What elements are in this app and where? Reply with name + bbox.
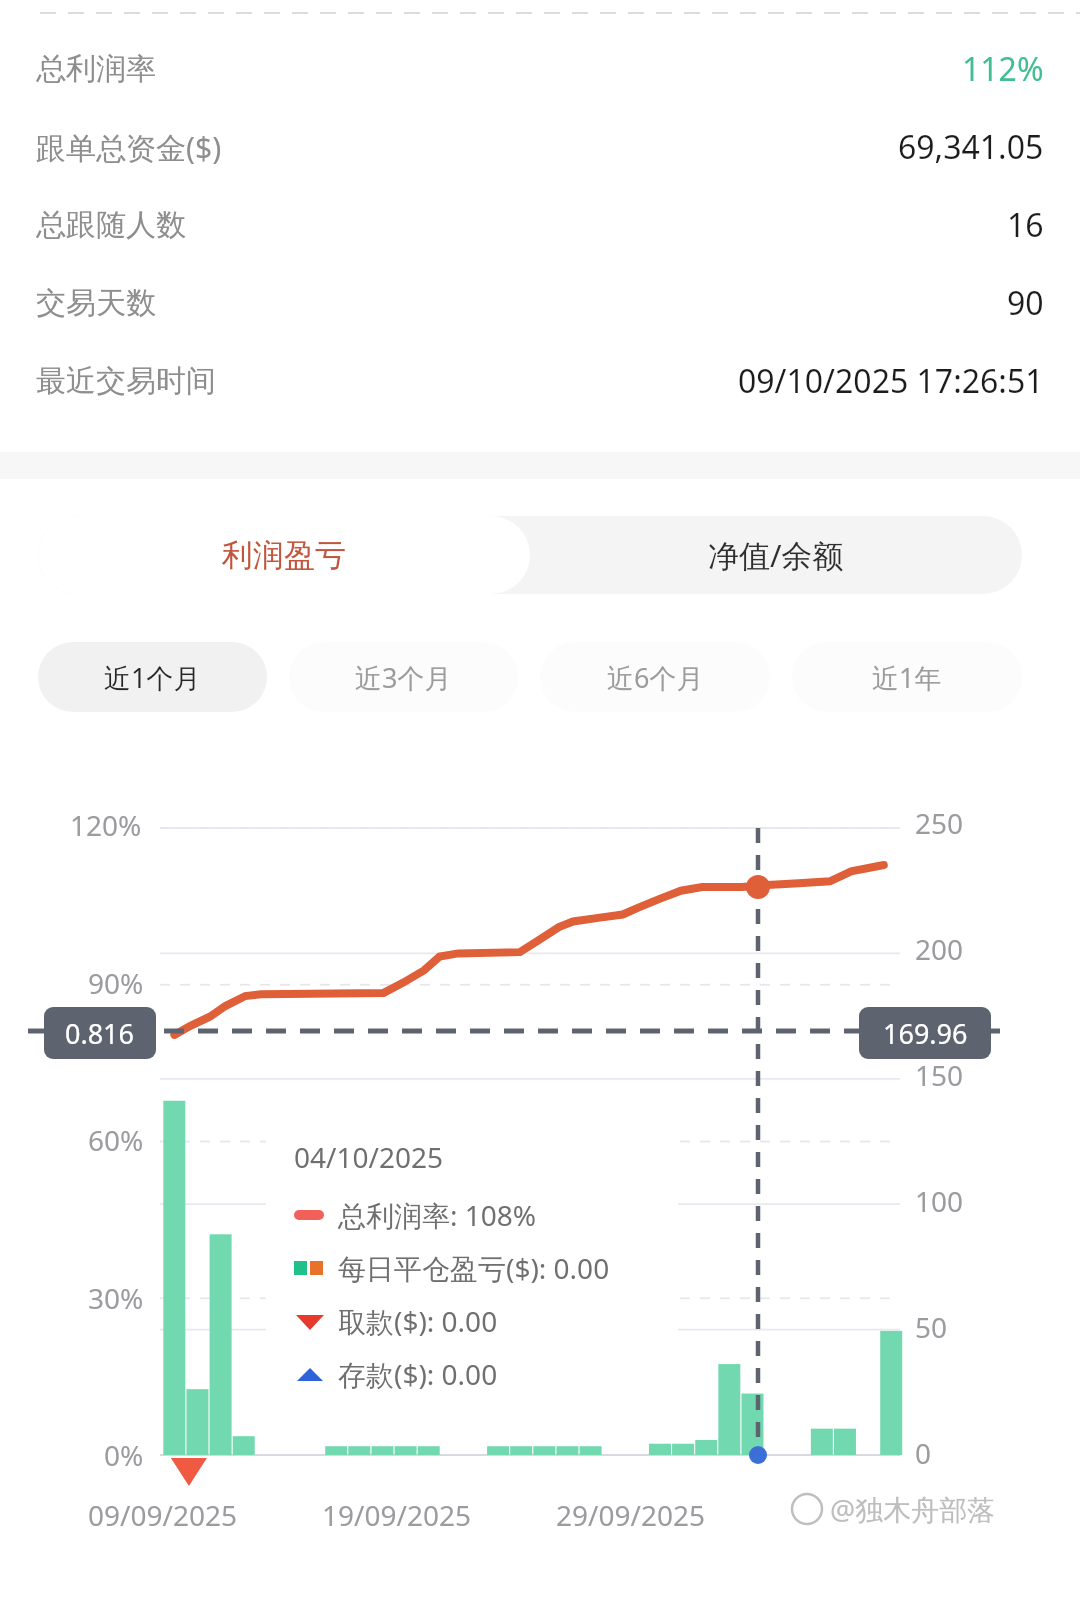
staticText: 取款($): 0.00 [338,1302,498,1340]
staticText: 120% [70,806,142,844]
staticText: 150 [915,1056,964,1094]
staticText: 90% [88,964,144,1002]
button[interactable]: 利润盈亏 [38,516,530,594]
staticText: 250 [915,804,964,842]
staticText: 30% [88,1279,144,1317]
staticText: 跟单总资金($) [36,127,222,168]
staticText: 100 [915,1182,964,1220]
staticText: 最近交易时间 [36,362,216,400]
button[interactable]: 近3个月 [289,642,518,712]
staticText: 0.816 [65,1015,135,1052]
other: Profit and loss chart [0,0,1080,1599]
staticText: 0% [104,1436,144,1474]
staticText: 112% [962,47,1044,91]
staticText: 存款($): 0.00 [338,1355,498,1393]
staticText: 近1年 [872,659,942,696]
staticText: 29/09/2025 [556,1496,705,1534]
staticText: @独木舟部落 [830,1490,996,1528]
staticText: 近1个月 [104,659,201,696]
staticText: 09/10/2025 17:26:51 [738,359,1044,403]
staticText: 169.96 [883,1015,968,1052]
button[interactable]: 交易天数 [0,264,1080,342]
staticText: 90 [1007,281,1044,325]
staticText: 69,341.05 [898,125,1044,169]
staticText: 09/09/2025 [88,1496,237,1534]
staticText: 每日平仓盈亏($): 0.00 [338,1249,610,1287]
staticText: 净值/余额 [708,534,844,576]
button[interactable]: 近6个月 [540,642,770,712]
staticText: 总利润率: 108% [338,1196,537,1234]
button[interactable]: 近1年 [792,642,1022,712]
button[interactable]: 总利润率 [0,30,1080,108]
button[interactable]: 跟单总资金($) [0,108,1080,186]
staticText: 近6个月 [607,659,704,696]
staticText: 0 [915,1434,932,1472]
staticText: 04/10/2025 [294,1138,443,1176]
button[interactable]: 总跟随人数 [0,186,1080,264]
staticText: 总利润率 [36,50,156,88]
button[interactable]: 最近交易时间 [0,342,1080,420]
staticText: 200 [915,930,964,968]
staticText: 总跟随人数 [36,206,186,244]
button[interactable]: 净值/余额 [530,516,1022,594]
staticText: 60% [88,1121,144,1159]
staticText: 50 [915,1308,948,1346]
staticText: 交易天数 [36,284,156,322]
staticText: 利润盈亏 [222,536,346,575]
staticText: 19/09/2025 [322,1496,471,1534]
button[interactable]: 近1个月 [38,642,267,712]
staticText: 近3个月 [355,659,452,696]
staticText: 16 [1007,203,1044,247]
